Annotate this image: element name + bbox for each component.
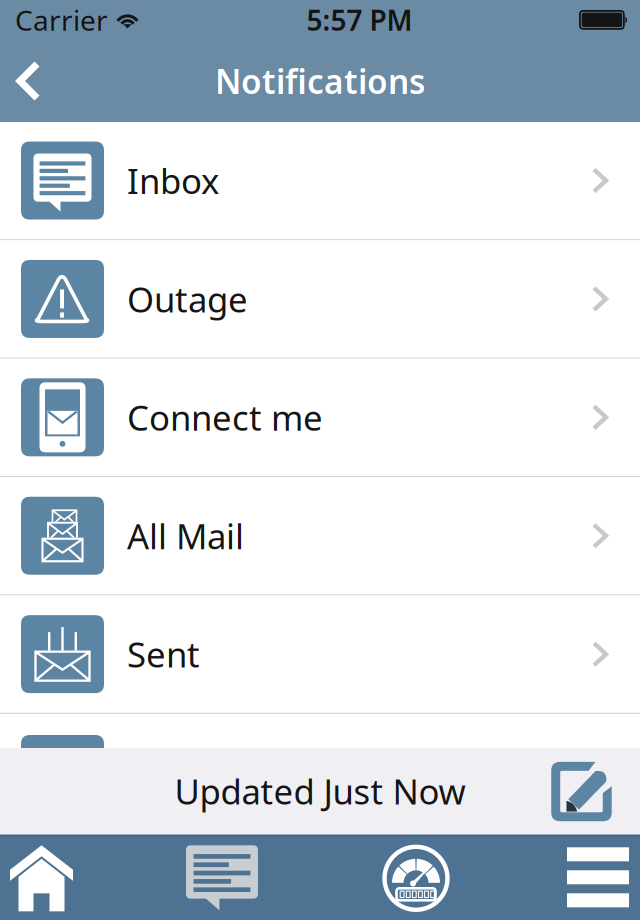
staticText: 5:57 PM <box>306 1 412 39</box>
button[interactable]: Home <box>0 836 160 920</box>
staticText: Outage <box>127 276 248 322</box>
staticText: Carrier <box>15 1 108 39</box>
button[interactable]: Outage <box>0 240 640 359</box>
button[interactable]: Messages <box>160 836 320 920</box>
staticText: Notifications <box>215 59 425 103</box>
staticText: All Mail <box>127 513 244 559</box>
button[interactable]: Usage <box>320 836 480 920</box>
button[interactable]: Menu <box>480 836 640 920</box>
staticText: Connect me <box>127 394 323 440</box>
staticText: Inbox <box>127 157 219 203</box>
button[interactable]: Compose <box>549 758 640 823</box>
button[interactable]: Connect me <box>0 359 640 477</box>
button[interactable]: All Mail <box>0 477 640 596</box>
button[interactable]: Back <box>0 40 63 122</box>
staticText: Sent <box>127 631 200 677</box>
staticText: Updated Just Now <box>174 768 465 814</box>
button[interactable]: Inbox <box>0 122 640 240</box>
button[interactable]: Sent <box>0 596 640 714</box>
